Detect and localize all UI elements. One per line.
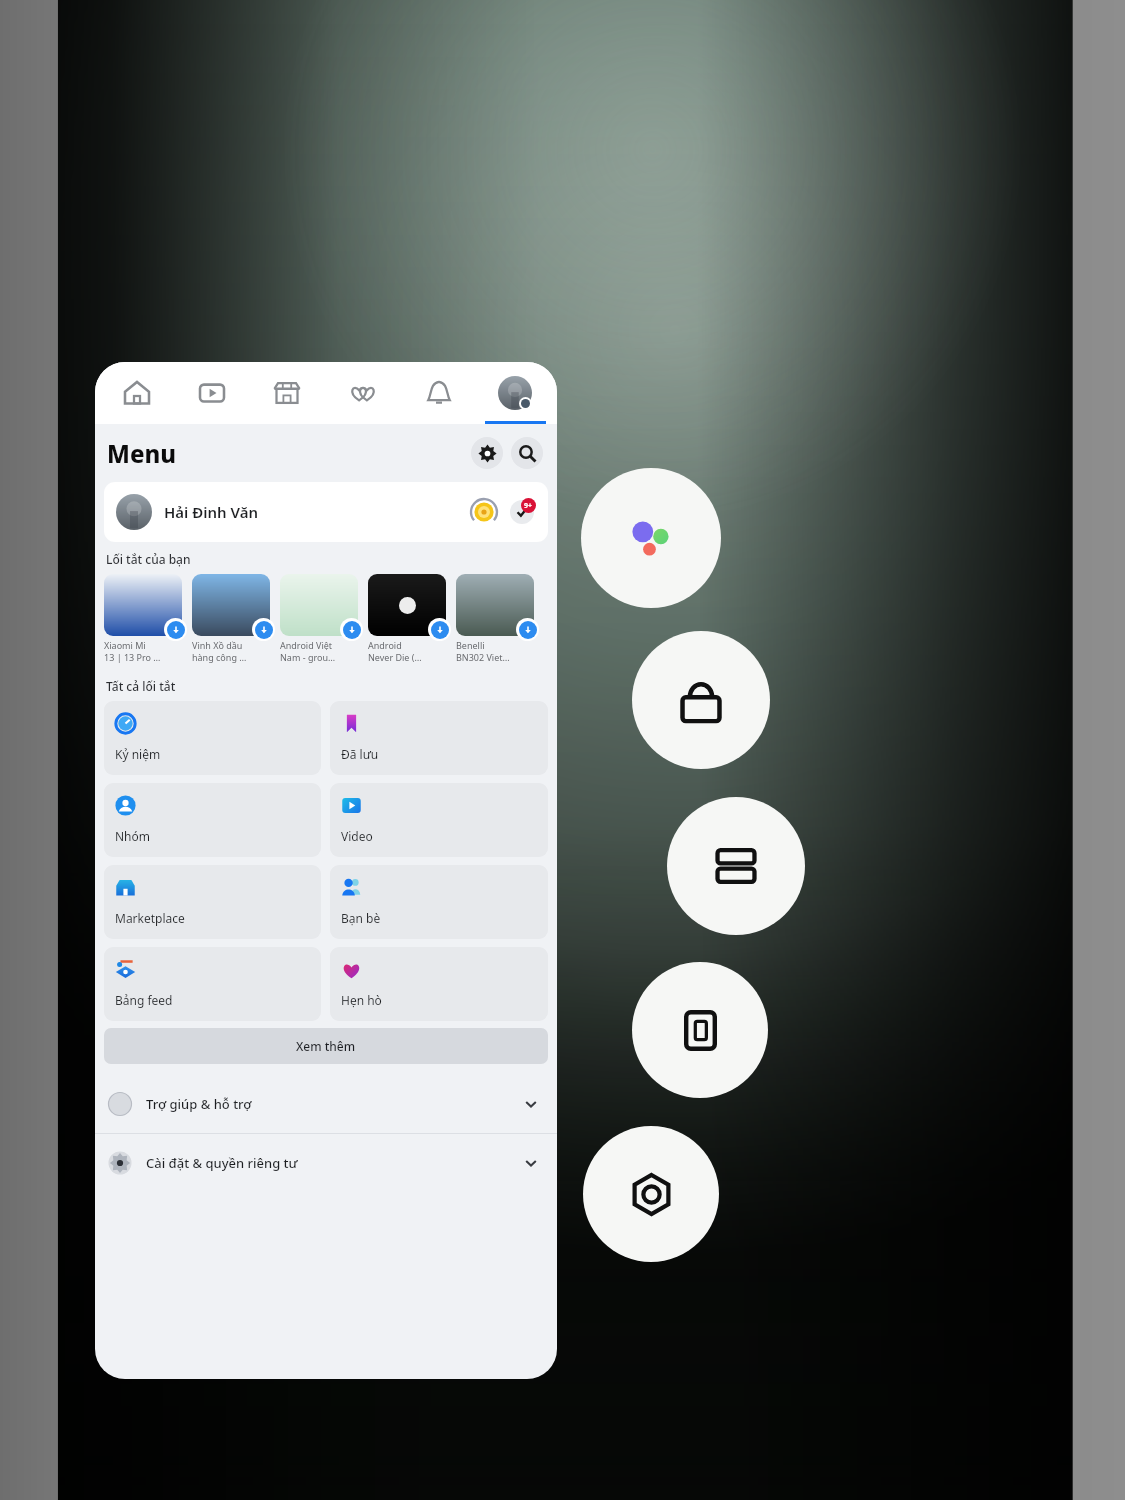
button[interactable]: Settings xyxy=(471,437,503,469)
button[interactable]: Cài đặt & quyền riêng tư xyxy=(95,1134,557,1192)
button[interactable]: Đã lưu xyxy=(330,701,548,775)
staticText: Android xyxy=(368,639,402,651)
staticText: Xiaomi Mi xyxy=(104,639,146,651)
staticText: 9+ xyxy=(524,501,533,511)
button[interactable]: Bạn bè xyxy=(330,865,548,939)
staticText: Hải Đinh Văn xyxy=(164,502,259,522)
staticText: 13 | 13 Pro … xyxy=(104,651,161,663)
staticText: Nhóm xyxy=(115,828,151,844)
button[interactable]: Kỷ niệm xyxy=(104,701,321,775)
button[interactable]: Bảng feed xyxy=(104,947,321,1021)
staticText: Bảng feed xyxy=(115,992,173,1008)
button[interactable]: Android xyxy=(368,574,446,663)
staticText: BN302 Viet… xyxy=(456,651,510,663)
button[interactable]: Xiaomi Mi xyxy=(104,574,182,663)
staticText: Trợ giúp & hỗ trợ xyxy=(146,1095,252,1113)
staticText: Xem thêm xyxy=(296,1038,356,1054)
staticText: Đã lưu xyxy=(341,746,379,762)
button[interactable]: Hẹn hò xyxy=(330,947,548,1021)
staticText: Lối tắt của bạn xyxy=(106,551,191,567)
staticText: Kỷ niệm xyxy=(115,746,161,762)
button[interactable]: Open in pop-up xyxy=(632,962,768,1098)
button[interactable]: Marketplace xyxy=(104,865,321,939)
staticText: Video xyxy=(341,828,373,844)
staticText: Hẹn hò xyxy=(341,992,382,1008)
staticText: hàng công … xyxy=(192,651,247,663)
button[interactable]: Hải Đinh Văn xyxy=(104,482,548,542)
button[interactable]: Lock app xyxy=(632,631,770,769)
staticText: Android Việt xyxy=(280,639,333,651)
button[interactable]: Xem thêm xyxy=(104,1028,548,1064)
button[interactable]: App info xyxy=(583,1126,719,1262)
button[interactable]: Menu xyxy=(477,362,553,424)
button[interactable]: Assistant xyxy=(581,468,721,608)
button[interactable]: Video xyxy=(174,362,249,424)
staticText: Benelli xyxy=(456,639,485,651)
staticText: Marketplace xyxy=(115,910,185,926)
staticText: Cài đặt & quyền riêng tư xyxy=(146,1154,298,1172)
staticText: Tất cả lối tắt xyxy=(106,678,176,694)
staticText: Vinh Xồ dầu xyxy=(192,639,243,651)
button[interactable]: Nhóm xyxy=(104,783,321,857)
staticText: Bạn bè xyxy=(341,910,381,926)
button[interactable]: Friends xyxy=(325,362,401,424)
button[interactable]: Video xyxy=(330,783,548,857)
button[interactable]: Split screen xyxy=(667,797,805,935)
staticText: Menu xyxy=(107,437,177,470)
button[interactable]: Trợ giúp & hỗ trợ xyxy=(95,1075,557,1133)
button[interactable]: Home xyxy=(99,362,174,424)
button[interactable]: Android Việt xyxy=(280,574,358,663)
button[interactable]: Vinh Xồ dầu xyxy=(192,574,270,663)
button[interactable]: Benelli xyxy=(456,574,534,663)
button[interactable]: Search xyxy=(511,437,543,469)
staticText: Never Die (… xyxy=(368,651,422,663)
button[interactable]: Notifications xyxy=(401,362,477,424)
button[interactable]: Marketplace xyxy=(249,362,325,424)
staticText: Nam - grou… xyxy=(280,651,336,663)
